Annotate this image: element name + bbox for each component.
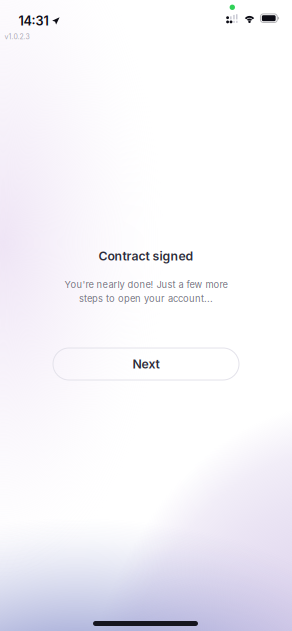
staticText: v1.0.2.3	[4, 32, 29, 41]
staticText: You're nearly done! Just a few more	[64, 279, 227, 290]
button[interactable]: Next	[53, 348, 239, 380]
staticText: Contract signed	[98, 249, 193, 263]
staticText: 14:31	[18, 13, 48, 29]
staticText: steps to open your account...	[79, 293, 213, 304]
staticText: Next	[132, 357, 159, 371]
